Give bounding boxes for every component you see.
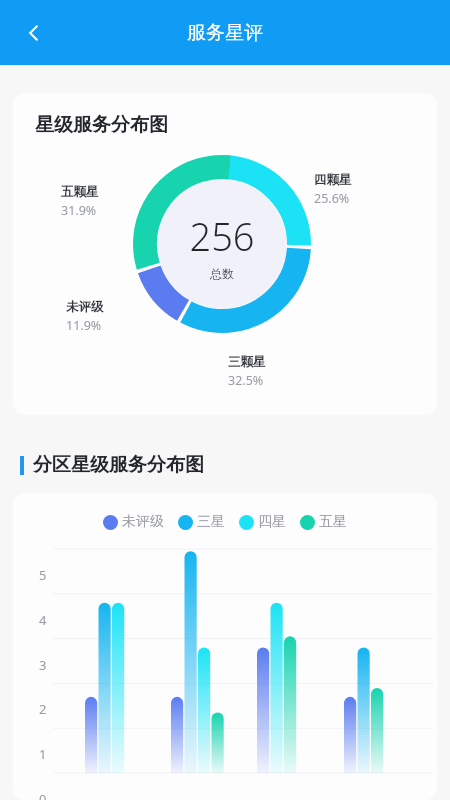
button[interactable]: 未评级: [103, 513, 164, 531]
button[interactable]: 四星: [239, 513, 286, 531]
staticText: 三颗星: [228, 354, 266, 370]
button[interactable]: 五星: [300, 513, 347, 531]
button[interactable]: 分区星级服务分布图: [20, 453, 204, 477]
staticText: 1: [39, 745, 47, 763]
staticText: 2: [39, 700, 47, 718]
button[interactable]: 星级服务分布图: [13, 93, 437, 415]
staticText: 31.9%: [61, 202, 97, 219]
staticText: 服务星评: [187, 21, 263, 45]
staticText: 25.6%: [314, 190, 350, 207]
staticText: 总数: [210, 266, 234, 281]
staticText: 五颗星: [61, 184, 99, 200]
staticText: 5: [39, 566, 47, 584]
staticText: 4: [39, 611, 47, 629]
button[interactable]: 未评级: [13, 493, 437, 800]
staticText: 分区星级服务分布图: [33, 453, 204, 477]
staticText: 四颗星: [314, 172, 352, 188]
staticText: 星级服务分布图: [35, 113, 168, 137]
staticText: 0: [39, 790, 47, 800]
button[interactable]: 三星: [178, 513, 225, 531]
staticText: 11.9%: [66, 317, 102, 334]
staticText: 五星: [319, 513, 347, 531]
staticText: 未评级: [66, 299, 104, 315]
staticText: 32.5%: [228, 372, 264, 389]
staticText: 未评级: [122, 513, 164, 531]
staticText: 三星: [197, 513, 225, 531]
button[interactable]: Back: [10, 9, 58, 57]
staticText: 256: [189, 210, 255, 262]
staticText: 四星: [258, 513, 286, 531]
staticText: 3: [39, 656, 47, 674]
